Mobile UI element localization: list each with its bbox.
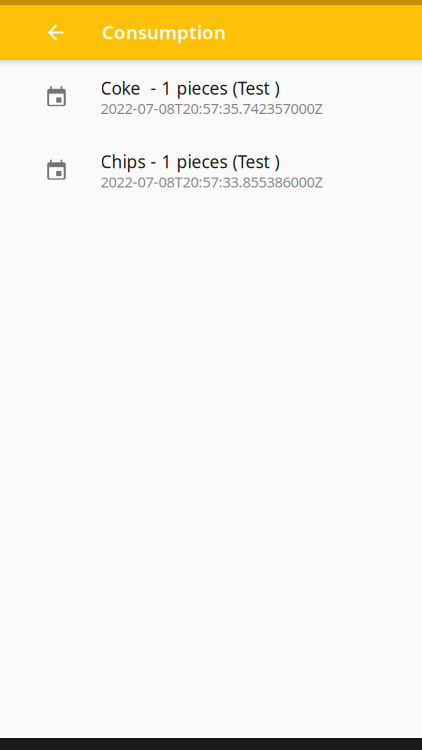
staticText: Coke - 1 pieces (Test ) <box>101 77 280 100</box>
staticText: Consumption <box>102 20 226 44</box>
button[interactable]: Back <box>32 8 80 56</box>
staticText: 2022-07-08T20:57:35.742357000Z <box>101 98 323 118</box>
button[interactable]: Coke - 1 pieces (Test ) <box>0 67 422 140</box>
button[interactable]: Chips - 1 pieces (Test ) <box>0 140 422 214</box>
staticText: 2022-07-08T20:57:33.855386000Z <box>101 172 323 191</box>
staticText: Chips - 1 pieces (Test ) <box>101 150 280 173</box>
